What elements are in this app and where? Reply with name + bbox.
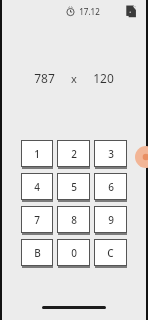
staticText: 17.12 [79,6,100,17]
staticText: C [107,246,114,260]
staticText: 7 [34,213,40,227]
button[interactable]: C [94,239,127,266]
staticText: 3 [108,147,114,161]
staticText: 8 [71,213,77,227]
staticText: B [34,246,41,260]
staticText: 6 [108,180,114,194]
button[interactable]: Exit [125,5,138,18]
button[interactable]: 5 [57,173,90,200]
button[interactable]: 8 [57,206,90,233]
staticText: 1 [34,147,40,161]
staticText: 5 [71,180,77,194]
button[interactable]: 6 [94,173,127,200]
staticText: 9 [108,213,114,227]
button[interactable]: 4 [21,173,53,200]
staticText: 0 [71,246,77,260]
button[interactable]: 0 [57,239,90,266]
button[interactable]: 7 [21,206,53,233]
button[interactable]: Home [42,306,106,309]
button[interactable]: B [21,239,53,266]
button[interactable]: 3 [94,140,127,167]
staticText: 787 [34,70,55,86]
staticText: 120 [93,70,114,86]
staticText: 4 [34,180,40,194]
staticText: x [71,71,77,86]
button[interactable]: 9 [94,206,127,233]
button[interactable]: 1 [21,140,53,167]
staticText: 2 [71,147,77,161]
button[interactable]: 2 [57,140,90,167]
